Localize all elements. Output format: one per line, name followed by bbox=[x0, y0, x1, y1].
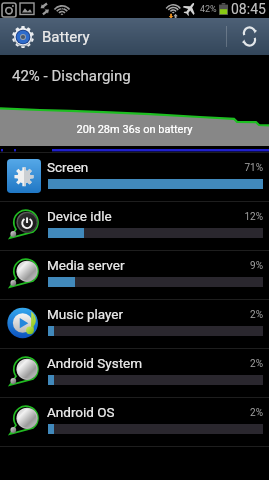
staticText: 12% bbox=[215, 211, 263, 223]
staticText: 42% - Discharging bbox=[12, 67, 131, 85]
staticText: 20h 28m 36s on battery bbox=[0, 123, 269, 136]
staticText: Android System bbox=[47, 355, 143, 371]
button[interactable]: Refresh bbox=[232, 18, 266, 55]
button[interactable]: Android System bbox=[0, 349, 269, 397]
staticText: Battery bbox=[42, 28, 90, 46]
staticText: 2% bbox=[215, 309, 263, 321]
staticText: 42% bbox=[200, 4, 217, 15]
staticText: Music player bbox=[47, 306, 124, 322]
staticText: Device idle bbox=[47, 208, 112, 224]
staticText: 08:45 bbox=[231, 1, 266, 17]
button[interactable]: Battery bbox=[0, 26, 98, 48]
staticText: Media server bbox=[47, 257, 125, 273]
button[interactable]: Screen bbox=[0, 153, 269, 201]
button[interactable]: Music player bbox=[0, 300, 269, 348]
button[interactable]: Media server bbox=[0, 251, 269, 299]
button[interactable]: Android OS bbox=[0, 398, 269, 446]
staticText: 2% bbox=[215, 407, 263, 419]
staticText: 71% bbox=[215, 162, 263, 174]
button[interactable]: Device idle bbox=[0, 202, 269, 250]
staticText: 2% bbox=[215, 358, 263, 370]
staticText: 9% bbox=[215, 260, 263, 272]
staticText: Screen bbox=[47, 159, 89, 175]
staticText: Android OS bbox=[47, 404, 115, 420]
